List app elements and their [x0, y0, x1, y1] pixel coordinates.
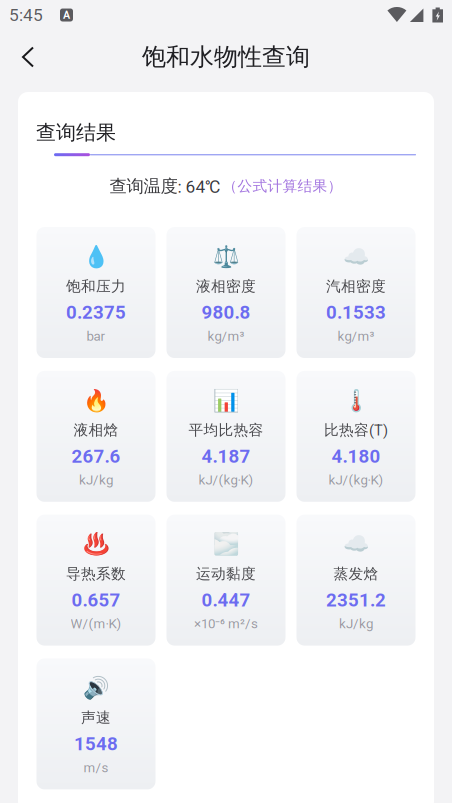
staticText: 💧: [82, 244, 109, 269]
button[interactable]: 📊: [166, 371, 285, 502]
staticText: kJ/kg: [339, 616, 373, 632]
staticText: 1548: [74, 733, 118, 755]
staticText: kg/m³: [207, 328, 244, 344]
staticText: 267.6: [71, 445, 120, 467]
staticText: 蒸发焓: [333, 565, 378, 583]
staticText: ×10⁻⁶ m²/s: [194, 616, 258, 632]
staticText: m/s: [83, 760, 108, 775]
staticText: （公式计算结果）: [222, 177, 342, 195]
staticText: 汽相密度: [326, 277, 386, 295]
staticText: 液相焓: [73, 421, 118, 439]
button[interactable]: 🌫️: [166, 515, 285, 646]
button[interactable]: ♨️: [36, 515, 155, 646]
staticText: 2351.2: [326, 589, 386, 611]
staticText: kJ/(kg·K): [198, 472, 253, 488]
staticText: 980.8: [201, 301, 250, 323]
staticText: 4.180: [331, 445, 380, 467]
staticText: bar: [86, 328, 105, 344]
button[interactable]: ☁️: [296, 227, 415, 358]
staticText: 平均比热容: [188, 421, 263, 439]
staticText: ⚖️: [212, 244, 239, 269]
staticText: 5:45: [9, 5, 43, 25]
staticText: A: [63, 9, 70, 21]
button[interactable]: ☁️: [296, 515, 415, 646]
staticText: 比热容(T): [324, 421, 388, 439]
staticText: 饱和压力: [66, 277, 126, 295]
staticText: 0.657: [71, 589, 120, 611]
staticText: ☁️: [342, 244, 369, 269]
staticText: 🌡️: [342, 388, 369, 413]
staticText: W/(m·K): [70, 616, 121, 632]
staticText: 运动黏度: [196, 565, 256, 583]
staticText: 📊: [212, 388, 239, 413]
staticText: 4.187: [201, 445, 250, 467]
button[interactable]: 🌡️: [296, 371, 415, 502]
staticText: 查询温度: 64℃: [109, 175, 220, 197]
staticText: ☁️: [342, 532, 369, 557]
staticText: 查询结果: [36, 120, 116, 145]
staticText: kJ/kg: [79, 472, 113, 488]
button[interactable]: 返回: [6, 35, 50, 79]
button[interactable]: 🔥: [36, 371, 155, 502]
staticText: 饱和水物性查询: [142, 42, 310, 72]
button[interactable]: 💧: [36, 227, 155, 358]
staticText: 导热系数: [66, 565, 126, 583]
staticText: 🔥: [82, 388, 109, 413]
staticText: ♨️: [82, 532, 109, 557]
button[interactable]: ⚖️: [166, 227, 285, 358]
staticText: 液相密度: [196, 277, 256, 295]
staticText: kJ/(kg·K): [328, 472, 383, 488]
staticText: 🌫️: [212, 532, 239, 557]
staticText: 0.1533: [326, 301, 386, 323]
button[interactable]: 🔊: [36, 658, 155, 789]
staticText: 0.2375: [66, 301, 126, 323]
staticText: kg/m³: [337, 328, 374, 344]
staticText: 0.447: [201, 589, 250, 611]
staticText: 声速: [81, 708, 111, 727]
staticText: 🔊: [82, 675, 109, 700]
